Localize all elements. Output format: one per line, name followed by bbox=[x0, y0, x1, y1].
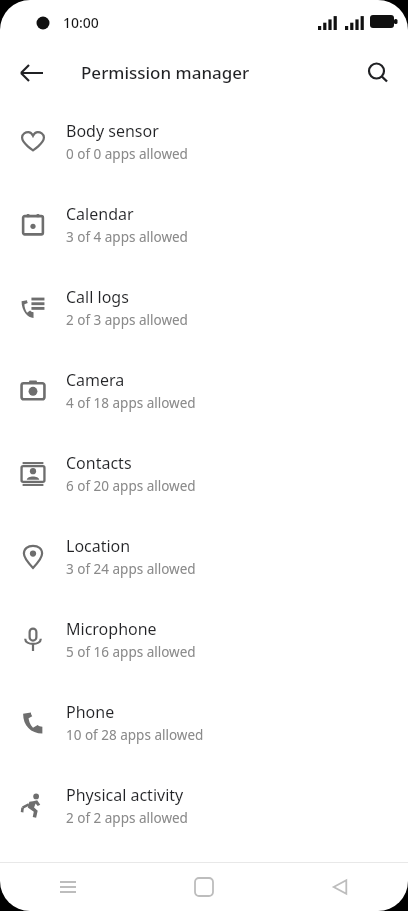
staticText: Call logs bbox=[66, 286, 129, 308]
button[interactable]: Call logs bbox=[0, 266, 408, 349]
button[interactable]: Calendar bbox=[0, 183, 408, 266]
staticText: Body sensor bbox=[66, 120, 159, 142]
staticText: Calendar bbox=[66, 203, 134, 225]
button[interactable]: Physical activity bbox=[0, 764, 408, 847]
staticText: 4 of 18 apps allowed bbox=[66, 394, 196, 412]
button[interactable]: Location bbox=[0, 515, 408, 598]
staticText: Location bbox=[66, 535, 131, 557]
staticText: Camera bbox=[66, 369, 125, 391]
button[interactable]: Home bbox=[136, 863, 272, 911]
button[interactable]: Phone bbox=[0, 681, 408, 764]
staticText: Phone bbox=[66, 701, 115, 723]
button[interactable]: Back bbox=[10, 51, 54, 95]
staticText: Permission manager bbox=[81, 61, 250, 84]
staticText: 2 of 2 apps allowed bbox=[66, 809, 188, 827]
button[interactable]: Recents bbox=[0, 863, 136, 911]
button[interactable]: Body sensor bbox=[0, 100, 408, 183]
staticText: Contacts bbox=[66, 452, 132, 474]
staticText: 0 of 0 apps allowed bbox=[66, 145, 188, 163]
staticText: 3 of 24 apps allowed bbox=[66, 560, 196, 578]
staticText: 6 of 20 apps allowed bbox=[66, 477, 196, 495]
staticText: 2 of 3 apps allowed bbox=[66, 311, 188, 329]
button[interactable]: Back bbox=[272, 863, 408, 911]
staticText: Microphone bbox=[66, 618, 157, 640]
staticText: Physical activity bbox=[66, 784, 184, 806]
button[interactable]: Search bbox=[356, 51, 400, 95]
staticText: 5 of 16 apps allowed bbox=[66, 643, 196, 661]
staticText: 10 of 28 apps allowed bbox=[66, 726, 204, 744]
button[interactable]: Contacts bbox=[0, 432, 408, 515]
staticText: 10:00 bbox=[63, 13, 99, 32]
button[interactable]: Camera bbox=[0, 349, 408, 432]
button[interactable]: Microphone bbox=[0, 598, 408, 681]
staticText: 3 of 4 apps allowed bbox=[66, 228, 188, 246]
